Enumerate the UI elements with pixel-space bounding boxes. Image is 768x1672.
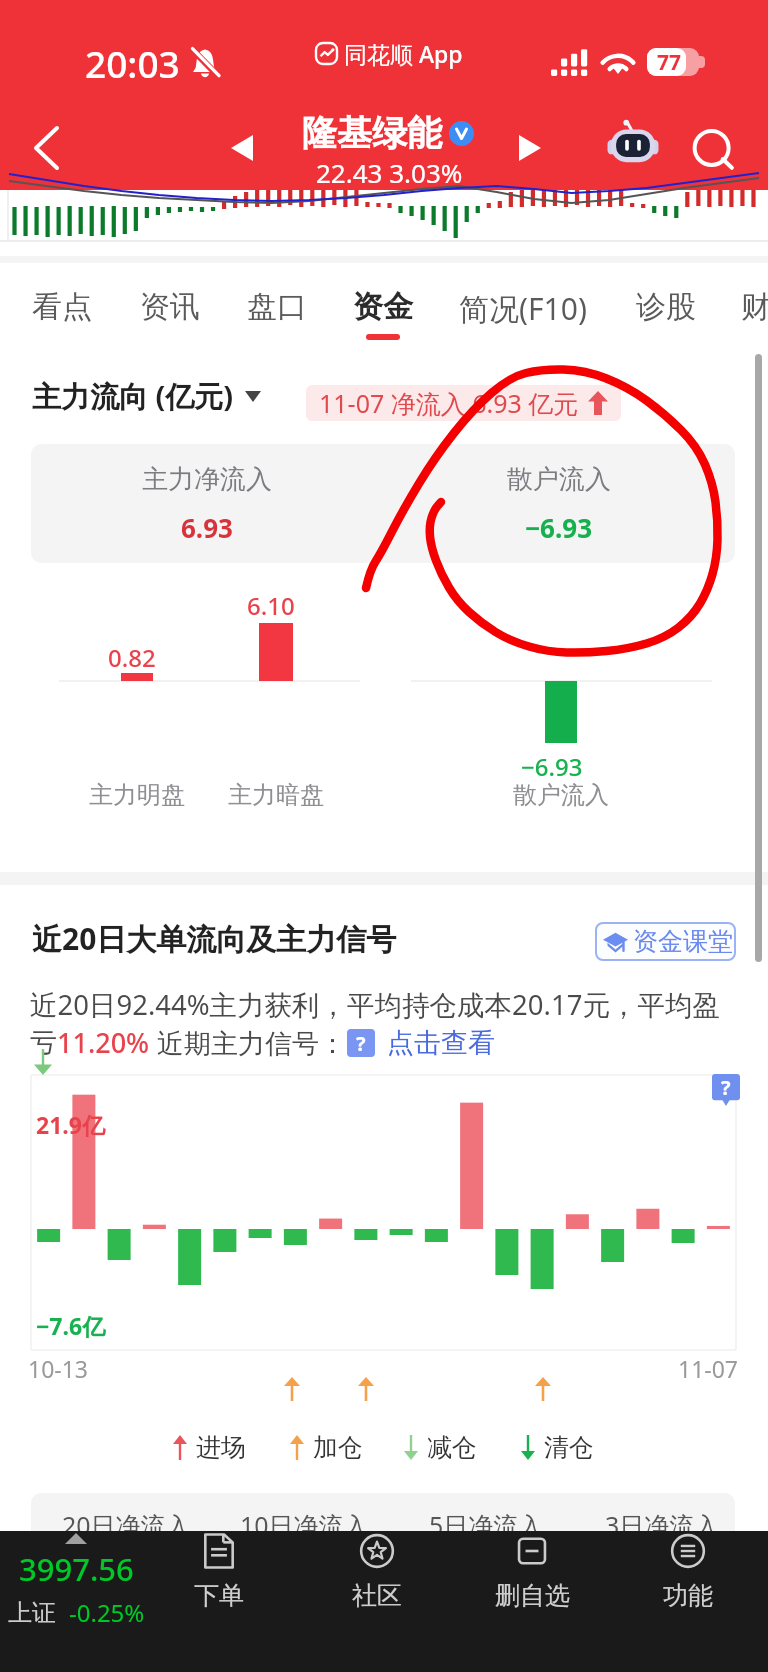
staticText: 上证 (8, 1598, 56, 1628)
staticText: 主力流向 (亿元) (32, 376, 234, 416)
staticText: 77 (657, 48, 682, 76)
staticText: 减仓 (427, 1432, 477, 1463)
button[interactable]: 社区 (305, 1531, 449, 1672)
button[interactable]: 资讯 (130, 263, 210, 360)
staticText: 散户流入 (513, 780, 609, 810)
staticText: 22.43 3.03% (316, 155, 463, 190)
staticText: 10日净流入 (240, 1508, 369, 1542)
staticText: 近20日92.44%主力获利，平均持仓成本20.17元，平均盈 (30, 986, 720, 1024)
staticText: 诊股 (636, 288, 696, 326)
button[interactable]: AI assistant (600, 112, 666, 178)
button[interactable]: Search (680, 115, 746, 181)
staticText: 3997.56 (19, 1548, 134, 1590)
staticText: 10-13 (28, 1353, 89, 1384)
button[interactable]: 下单 (147, 1531, 291, 1672)
button[interactable]: Next stock (503, 121, 557, 175)
staticText: 删自选 (495, 1580, 570, 1611)
button[interactable]: 删自选 (460, 1531, 604, 1672)
staticText: 主力净流入 (142, 463, 272, 496)
staticText: 5日净流入 (429, 1508, 544, 1542)
button[interactable]: 11-07 净流入 6.93 亿元 (306, 385, 621, 421)
staticText: 同花顺 App (344, 38, 463, 69)
button[interactable]: 功能 (616, 1531, 760, 1672)
staticText: 隆基绿能 (302, 111, 442, 155)
staticText: 资讯 (140, 288, 200, 326)
staticText: 11-07 净流入 6.93 亿元 (319, 386, 579, 420)
staticText: 11.20% (57, 1024, 150, 1061)
staticText: 0.82 (108, 641, 156, 674)
button[interactable]: 主力流向 (亿元) (32, 376, 261, 416)
button[interactable]: 散户流入 (383, 444, 735, 563)
button[interactable]: 进场 (173, 1432, 246, 1463)
staticText: 20:03 (85, 38, 180, 88)
staticText: −6.93 (525, 510, 593, 545)
staticText: -0.25% (69, 1596, 145, 1629)
staticText: 资金 (353, 288, 413, 326)
button[interactable]: 加仓 (290, 1432, 363, 1463)
button[interactable]: 资金课堂 (595, 922, 736, 961)
staticText: −7.6亿 (36, 1310, 106, 1341)
staticText: 11-07 (678, 1353, 739, 1384)
staticText: ? (721, 1074, 731, 1100)
staticText: 主力明盘 (89, 780, 185, 810)
button[interactable]: 盘口 (237, 263, 317, 360)
staticText: 加仓 (313, 1432, 363, 1463)
staticText: ? (356, 1030, 366, 1057)
staticText: 点击查看 (387, 1026, 495, 1060)
button[interactable]: 诊股 (626, 263, 706, 360)
staticText: 21.9亿 (36, 1109, 105, 1140)
staticText: 看点 (32, 288, 92, 326)
button[interactable]: 看点 (22, 263, 102, 360)
button[interactable]: 财 (716, 263, 768, 360)
staticText: 3日净流入 (605, 1508, 720, 1542)
staticText: 简况(F10) (459, 288, 587, 329)
button[interactable]: 清仓 (521, 1432, 594, 1463)
staticText: 散户流入 (507, 463, 611, 496)
staticText: 社区 (352, 1580, 402, 1611)
button[interactable]: 3997.56 (0, 1531, 152, 1672)
staticText: 功能 (663, 1580, 713, 1611)
staticText: 盘口 (247, 288, 307, 326)
staticText: 6.10 (247, 589, 295, 622)
button[interactable]: 减仓 (404, 1432, 477, 1463)
button[interactable]: ? (347, 1026, 495, 1060)
button[interactable]: 简况(F10) (448, 263, 598, 360)
button[interactable]: Back (16, 118, 76, 178)
staticText: 财 (741, 288, 768, 326)
staticText: 资金课堂 (633, 926, 733, 957)
staticText: 主力暗盘 (228, 780, 324, 810)
staticText: 亏 (30, 1026, 57, 1060)
button[interactable]: Previous stock (215, 121, 269, 175)
button[interactable]: 主力净流入 (31, 444, 383, 563)
staticText: 清仓 (544, 1432, 594, 1463)
staticText: 20日净流入 (62, 1508, 191, 1542)
button[interactable]: 资金 (343, 263, 423, 360)
staticText: 下单 (194, 1580, 244, 1611)
staticText: −6.93 (521, 750, 583, 783)
staticText: 近20日大单流向及主力信号 (32, 918, 397, 959)
staticText: 近期主力信号： (150, 1024, 347, 1061)
staticText: 进场 (196, 1432, 246, 1463)
staticText: 6.93 (181, 510, 233, 545)
